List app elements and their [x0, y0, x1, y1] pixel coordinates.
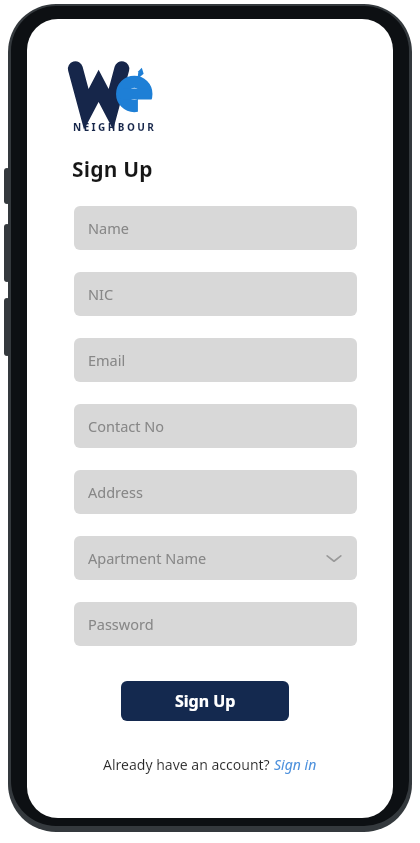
button[interactable]: Sign Up [121, 681, 289, 721]
button[interactable]: Contact No [74, 404, 357, 448]
button[interactable]: Apartment Name [74, 536, 357, 580]
other: WeNeighbour logo [74, 66, 166, 136]
button[interactable]: Address [74, 470, 357, 514]
staticText: Sign in [274, 755, 317, 774]
other: Open apartment list [325, 549, 343, 567]
staticText: Sign Up [175, 690, 236, 712]
staticText: Name [88, 218, 129, 238]
button[interactable]: Password [74, 602, 357, 646]
staticText: NEIGHBOUR [73, 120, 157, 134]
button[interactable]: Sign in [274, 755, 317, 774]
staticText: Contact No [88, 416, 165, 436]
button[interactable]: Name [74, 206, 357, 250]
staticText: Address [88, 482, 143, 502]
staticText: Password [88, 614, 154, 634]
staticText: Sign Up [72, 155, 153, 184]
button[interactable]: NIC [74, 272, 357, 316]
staticText: Already have an account? [103, 755, 274, 774]
staticText: NIC [88, 284, 114, 304]
staticText: Apartment Name [88, 548, 207, 568]
staticText: Email [88, 350, 126, 370]
button[interactable]: Email [74, 338, 357, 382]
